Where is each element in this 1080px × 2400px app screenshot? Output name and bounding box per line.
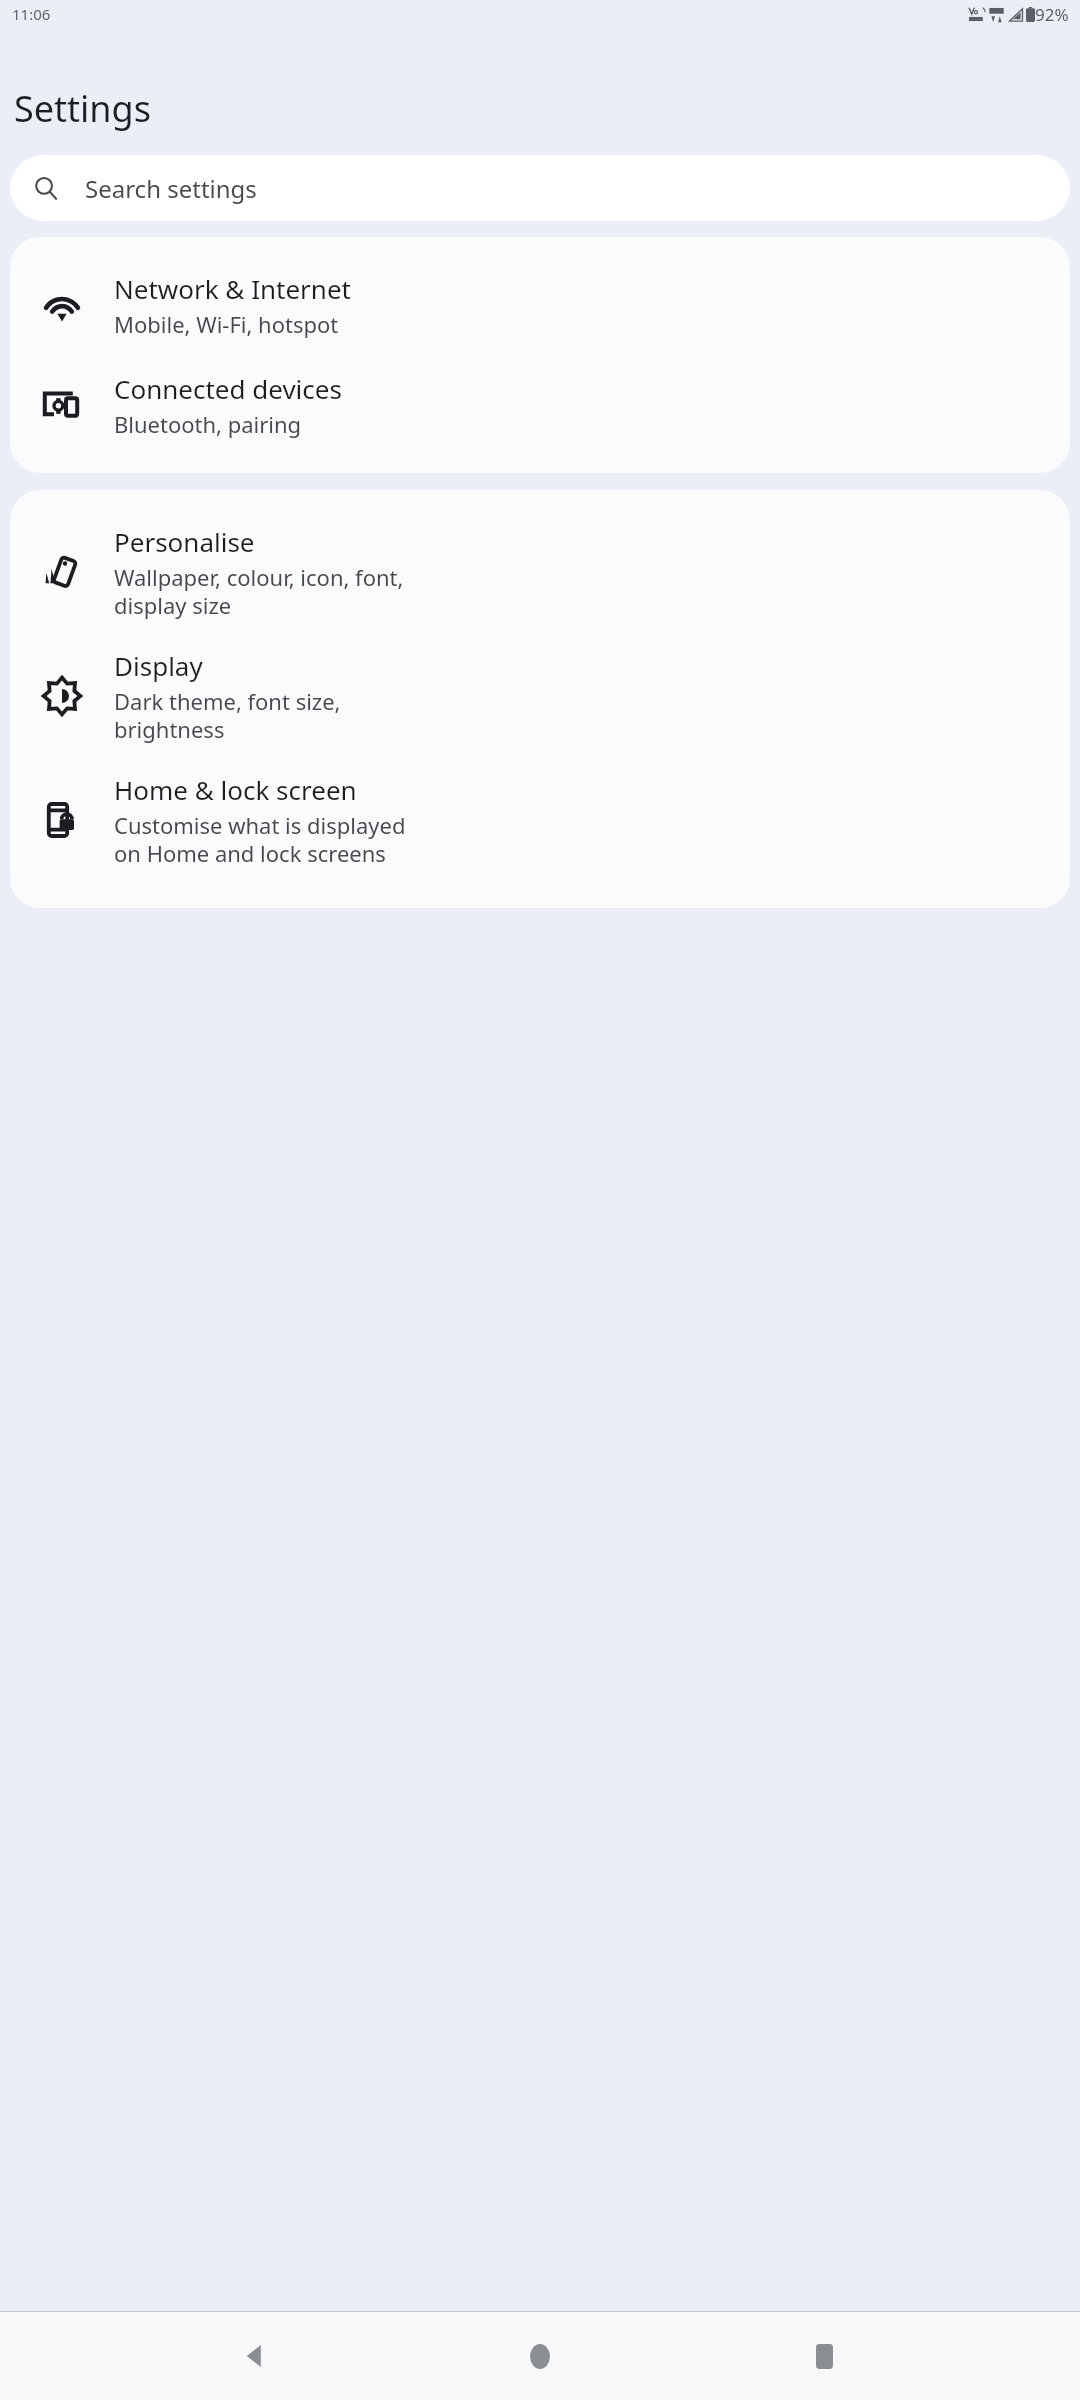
button[interactable]: Display [10,634,1070,758]
staticText: Home & lock screen [114,772,357,807]
staticText: Settings [14,84,151,133]
staticText: Search settings [85,172,257,205]
button[interactable]: Back [228,2328,284,2384]
button[interactable]: Personalise [10,490,1070,634]
staticText: 92% [1035,3,1069,26]
button[interactable]: Home & lock screen [10,758,1070,908]
button[interactable]: Connected devices [10,355,1070,473]
button[interactable]: Recents [796,2328,852,2384]
button[interactable]: Search settings [10,155,1070,221]
staticText: Display [114,648,203,683]
staticText: Network & Internet [114,271,351,306]
staticText: Customise what is displayed on Home and … [114,810,406,868]
staticText: Connected devices [114,371,342,406]
button[interactable]: Home [512,2328,568,2384]
button[interactable]: Network & Internet [10,237,1070,355]
staticText: Wallpaper, colour, icon, font, display s… [114,562,404,620]
staticText: Dark theme, font size, brightness [114,686,341,744]
staticText: Mobile, Wi-Fi, hotspot [114,309,339,339]
staticText: 11:06 [12,4,51,24]
staticText: Bluetooth, pairing [114,409,302,439]
staticText: Personalise [114,524,255,559]
